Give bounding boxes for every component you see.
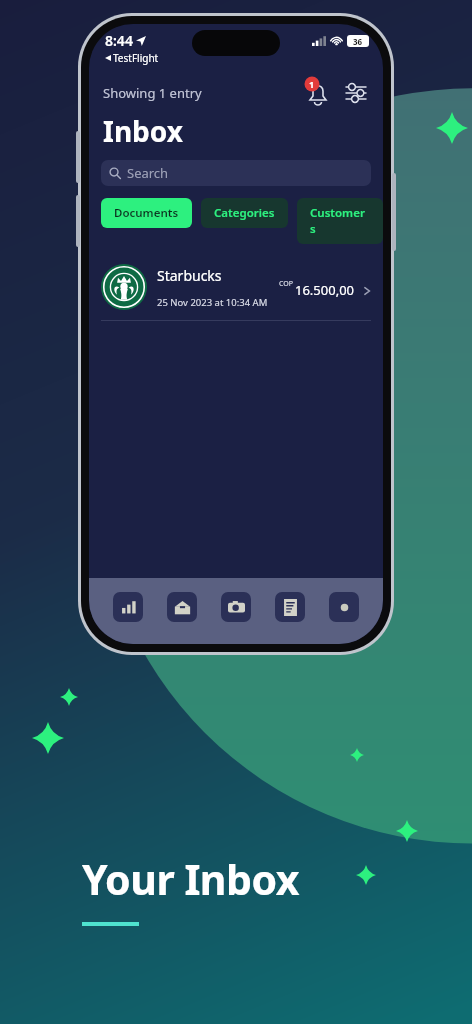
button[interactable]: Camera xyxy=(221,592,251,622)
button[interactable]: Starbucks xyxy=(89,260,383,320)
staticText: 25 Nov 2023 at 10:34 AM xyxy=(157,296,268,309)
staticText: 8:44 xyxy=(105,31,133,50)
staticText: Documents xyxy=(114,205,179,221)
button[interactable]: Notifications xyxy=(303,78,333,108)
staticText: Your Inbox xyxy=(82,851,299,907)
button[interactable]: Search xyxy=(101,160,371,186)
button[interactable]: Profile xyxy=(329,592,359,622)
staticText: Search xyxy=(127,164,169,182)
button[interactable]: Inbox xyxy=(167,592,197,622)
button[interactable]: Customers xyxy=(297,198,383,244)
staticText: TestFlight xyxy=(113,51,159,65)
button[interactable]: Documents xyxy=(275,592,305,622)
staticText: 36 xyxy=(353,36,363,47)
staticText: Showing 1 entry xyxy=(103,84,202,102)
button[interactable]: Stats xyxy=(113,592,143,622)
button[interactable]: Filters xyxy=(341,78,371,108)
staticText: 16.500,00 xyxy=(295,281,355,299)
button[interactable]: Categories xyxy=(201,198,288,228)
staticText: Starbucks xyxy=(157,266,222,285)
staticText: Inbox xyxy=(103,112,183,150)
staticText: COP xyxy=(279,279,293,289)
staticText: Customers xyxy=(310,205,370,237)
staticText: 1 xyxy=(309,78,315,90)
staticText: Categories xyxy=(214,205,275,221)
button[interactable]: Documents xyxy=(101,198,192,228)
